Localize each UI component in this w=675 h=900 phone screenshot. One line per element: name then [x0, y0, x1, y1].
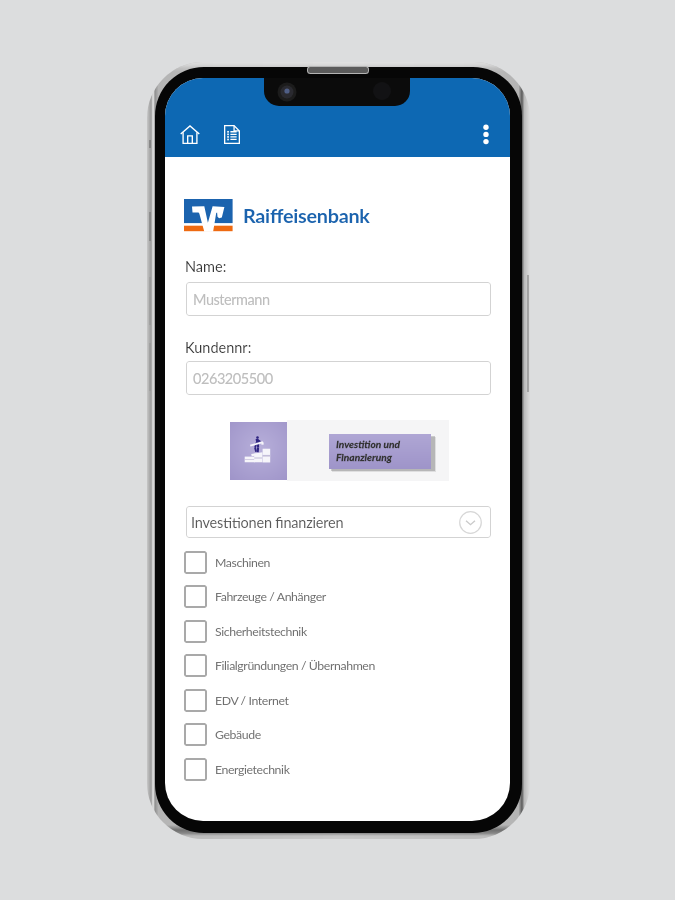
button[interactable]: Maschinen — [184, 547, 464, 577]
staticText: Mustermann — [193, 291, 270, 308]
staticText: 0263205500 — [193, 370, 273, 387]
staticText: EDV / Internet — [215, 693, 289, 708]
button[interactable]: EDV / Internet — [184, 685, 464, 715]
staticText: Energietechnik — [215, 762, 290, 777]
button[interactable]: More options — [470, 117, 502, 153]
button[interactable]: Filialgründungen / Übernahmen — [184, 650, 464, 680]
button[interactable]: Documents — [216, 117, 248, 151]
staticText: Maschinen — [215, 555, 270, 570]
staticText: Name: — [185, 258, 227, 275]
staticText: Fahrzeuge / Anhänger — [215, 589, 326, 604]
staticText: Investition und Finanzierung — [336, 438, 400, 463]
button[interactable]: Home — [172, 117, 208, 151]
button[interactable]: 0263205500 — [186, 361, 491, 395]
button[interactable]: Mustermann — [186, 282, 491, 316]
staticText: Gebäude — [215, 727, 261, 742]
staticText: Kundennr: — [185, 339, 252, 356]
button[interactable]: Investitionen finanzieren — [186, 506, 491, 538]
staticText: Sicherheitstechnik — [215, 624, 307, 639]
button[interactable]: Fahrzeuge / Anhänger — [184, 581, 464, 611]
staticText: Raiffeisenbank — [243, 203, 370, 227]
staticText: Investitionen finanzieren — [191, 514, 344, 531]
button[interactable]: Energietechnik — [184, 754, 464, 784]
button[interactable]: Sicherheitstechnik — [184, 616, 464, 646]
staticText: Filialgründungen / Übernahmen — [215, 658, 375, 673]
button[interactable]: Gebäude — [184, 719, 464, 749]
